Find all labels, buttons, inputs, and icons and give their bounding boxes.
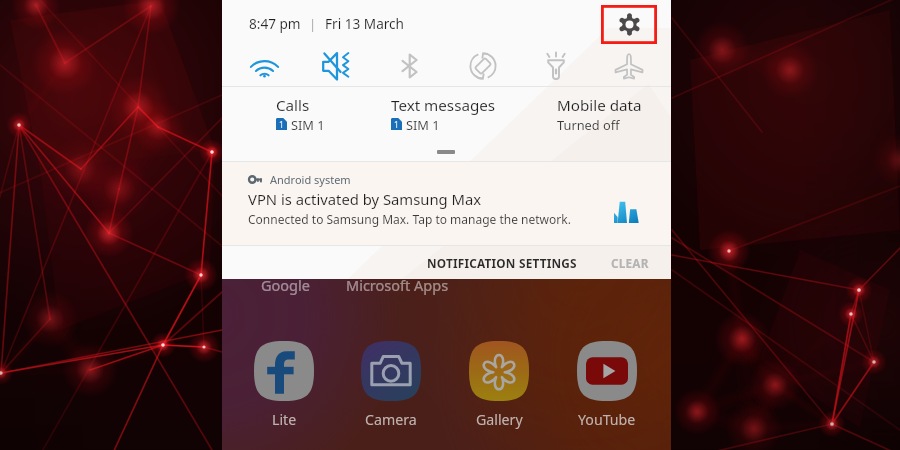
staticText: Fri 13 March <box>325 14 405 33</box>
staticText: Microsoft Apps <box>346 275 449 295</box>
staticText: Connected to Samsung Max. Tap to manage … <box>248 211 571 227</box>
button[interactable]: YouTube <box>562 341 652 429</box>
staticText: VPN is activated by Samsung Max <box>248 189 482 209</box>
staticText: SIM 1 <box>291 116 325 133</box>
button[interactable]: Wi-Fi <box>228 47 300 85</box>
staticText: NOTIFICATION SETTINGS <box>427 255 577 271</box>
button[interactable]: Bluetooth <box>373 47 446 85</box>
staticText: 1 <box>279 119 284 131</box>
button[interactable]: Flashlight <box>519 47 592 85</box>
button[interactable]: Android system <box>222 162 671 245</box>
staticText: SIM 1 <box>406 116 440 133</box>
staticText: Calls <box>276 95 310 116</box>
staticText: Mobile data <box>557 95 642 116</box>
staticText: Gallery <box>476 410 523 429</box>
staticText: Google <box>261 275 310 295</box>
button[interactable]: Gallery <box>454 341 544 429</box>
staticText: 8:47 pm <box>249 14 301 33</box>
staticText: YouTube <box>578 410 636 429</box>
button[interactable]: NOTIFICATION SETTINGS <box>419 248 585 278</box>
button[interactable]: Settings <box>601 5 657 44</box>
staticText: Android system <box>270 172 351 187</box>
staticText: 1 <box>394 119 399 131</box>
button[interactable]: CLEAR <box>603 248 657 278</box>
button[interactable]: Auto rotate <box>446 47 519 85</box>
staticText: Turned off <box>557 116 620 133</box>
staticText: Text messages <box>391 95 496 116</box>
staticText: CLEAR <box>611 255 649 271</box>
button[interactable]: Lite <box>239 341 329 429</box>
button[interactable]: Mute <box>300 47 373 85</box>
staticText: | <box>309 15 317 33</box>
button[interactable]: Camera <box>346 341 436 429</box>
button[interactable]: Text messages <box>391 95 496 133</box>
button[interactable] <box>437 150 455 154</box>
staticText: Camera <box>365 410 417 429</box>
button[interactable]: Calls <box>276 95 325 133</box>
staticText: Lite <box>272 410 297 429</box>
button[interactable]: Mobile data <box>557 95 642 133</box>
button[interactable]: Airplane mode <box>592 47 665 85</box>
